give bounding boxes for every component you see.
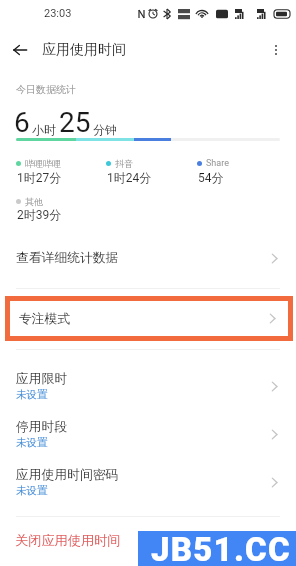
staticText: Share — [206, 158, 229, 169]
staticText: 1时27分 — [17, 170, 62, 185]
staticText: 分钟 — [93, 122, 117, 137]
staticText: 停用时段 — [16, 419, 68, 435]
staticText: JB51.CC — [151, 531, 291, 565]
staticText: 查看详细统计数据 — [16, 250, 269, 266]
staticText: 6 — [14, 106, 30, 139]
staticText: 未设置 — [16, 484, 48, 497]
staticText: 其他 — [25, 196, 43, 207]
staticText: 1时24分 — [107, 170, 152, 185]
staticText: 应用限时 — [16, 371, 68, 387]
staticText: 关闭应用使用时间 — [15, 532, 121, 549]
staticText: 23:03 — [44, 7, 72, 20]
button[interactable]: More options — [264, 38, 288, 62]
staticText: 应用使用时间 — [42, 41, 126, 59]
staticText: 专注模式 — [19, 311, 267, 327]
button[interactable]: Back — [8, 38, 32, 62]
button[interactable]: 查看详细统计数据 — [0, 235, 296, 281]
staticText: 54分 — [198, 170, 224, 185]
staticText: 抖音 — [115, 158, 133, 169]
button[interactable]: 专注模式 — [10, 301, 288, 336]
button[interactable]: 应用限时 — [0, 362, 296, 410]
staticText: 未设置 — [16, 436, 48, 449]
staticText: 应用使用时间密码 — [16, 467, 119, 483]
staticText: 2时39分 — [17, 207, 62, 222]
button[interactable]: 停用时段 — [0, 410, 296, 458]
staticText: 哔哩哔哩 — [25, 158, 61, 169]
staticText: 未设置 — [16, 388, 48, 401]
staticText: 今日数据统计 — [16, 83, 76, 96]
staticText: 25 — [59, 106, 91, 139]
button[interactable]: 应用使用时间密码 — [0, 458, 296, 506]
staticText: 小时 — [32, 122, 56, 137]
